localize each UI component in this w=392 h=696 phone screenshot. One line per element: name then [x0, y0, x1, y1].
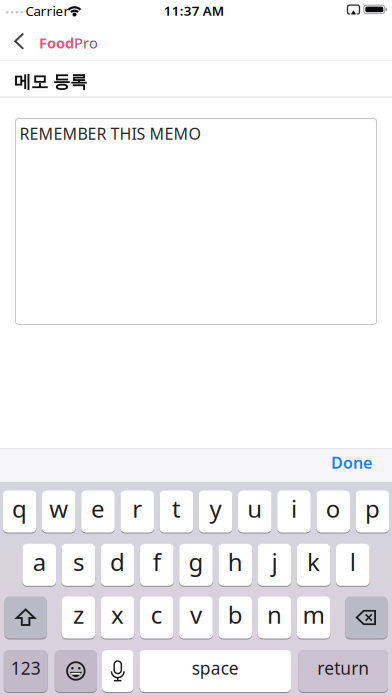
button[interactable]: t [160, 490, 193, 533]
button[interactable]: o [316, 490, 350, 533]
button[interactable]: n [258, 596, 291, 639]
button[interactable]: u [238, 490, 272, 533]
staticText: r [132, 493, 142, 524]
button[interactable]: v [179, 596, 213, 639]
staticText: k [307, 546, 320, 578]
button[interactable]: g [179, 543, 213, 586]
staticText: i [291, 493, 297, 524]
button[interactable]: z [62, 596, 95, 639]
button[interactable]: w [42, 490, 76, 533]
staticText: n [267, 599, 282, 630]
button[interactable]: p [356, 490, 389, 533]
staticText: d [110, 546, 125, 578]
button[interactable]: y [199, 490, 232, 533]
button[interactable]: Shift [5, 596, 47, 639]
button[interactable]: f [140, 543, 174, 586]
button[interactable]: return [298, 649, 388, 692]
staticText: z [73, 599, 84, 630]
staticText: space [192, 656, 239, 679]
staticText: 11:37 AM [164, 2, 224, 19]
staticText: return [317, 656, 369, 679]
staticText: p [365, 493, 380, 524]
staticText: j [271, 546, 277, 578]
button[interactable]: REMEMBER THIS MEMO [15, 118, 377, 325]
button[interactable]: Back [14, 33, 25, 50]
staticText: Done [331, 452, 372, 473]
button[interactable]: l [336, 543, 370, 586]
staticText: w [49, 493, 68, 524]
staticText: u [247, 493, 262, 524]
button[interactable]: Delete [345, 596, 387, 639]
staticText: s [73, 546, 84, 578]
staticText: t [172, 493, 181, 524]
button[interactable]: x [101, 596, 134, 639]
button[interactable]: space [139, 649, 291, 692]
staticText: Pro [74, 33, 98, 52]
staticText: l [350, 546, 356, 578]
staticText: g [188, 546, 203, 578]
staticText: Carrier [25, 2, 69, 20]
button[interactable]: r [120, 490, 154, 533]
button[interactable]: k [297, 543, 330, 586]
staticText: 메모 등록 [14, 71, 87, 92]
button[interactable]: j [258, 543, 291, 586]
button[interactable]: i [277, 490, 311, 533]
staticText: Food [39, 33, 74, 52]
staticText: o [326, 493, 341, 524]
button[interactable]: s [62, 543, 95, 586]
button[interactable]: Emoji [55, 649, 97, 692]
staticText: c [151, 599, 163, 630]
staticText: q [12, 493, 27, 524]
staticText: 123 [11, 656, 41, 679]
staticText: a [33, 546, 46, 578]
staticText: e [91, 493, 105, 524]
staticText: REMEMBER THIS MEMO [19, 123, 200, 144]
button[interactable]: Dictate [102, 649, 133, 692]
button[interactable]: b [218, 596, 252, 639]
staticText: b [228, 599, 243, 630]
staticText: x [111, 599, 124, 630]
staticText: v [190, 599, 202, 630]
button[interactable]: a [22, 543, 56, 586]
button[interactable]: h [218, 543, 252, 586]
staticText: m [303, 599, 325, 630]
button[interactable]: m [297, 596, 330, 639]
button[interactable]: 123 [4, 649, 47, 692]
button[interactable]: Food [39, 33, 98, 52]
staticText: f [153, 546, 161, 578]
button[interactable]: d [101, 543, 134, 586]
staticText: h [228, 546, 243, 578]
button[interactable]: c [140, 596, 174, 639]
button[interactable]: Done [0, 452, 372, 473]
button[interactable]: q [3, 490, 36, 533]
button[interactable]: e [81, 490, 115, 533]
staticText: y [210, 493, 222, 524]
